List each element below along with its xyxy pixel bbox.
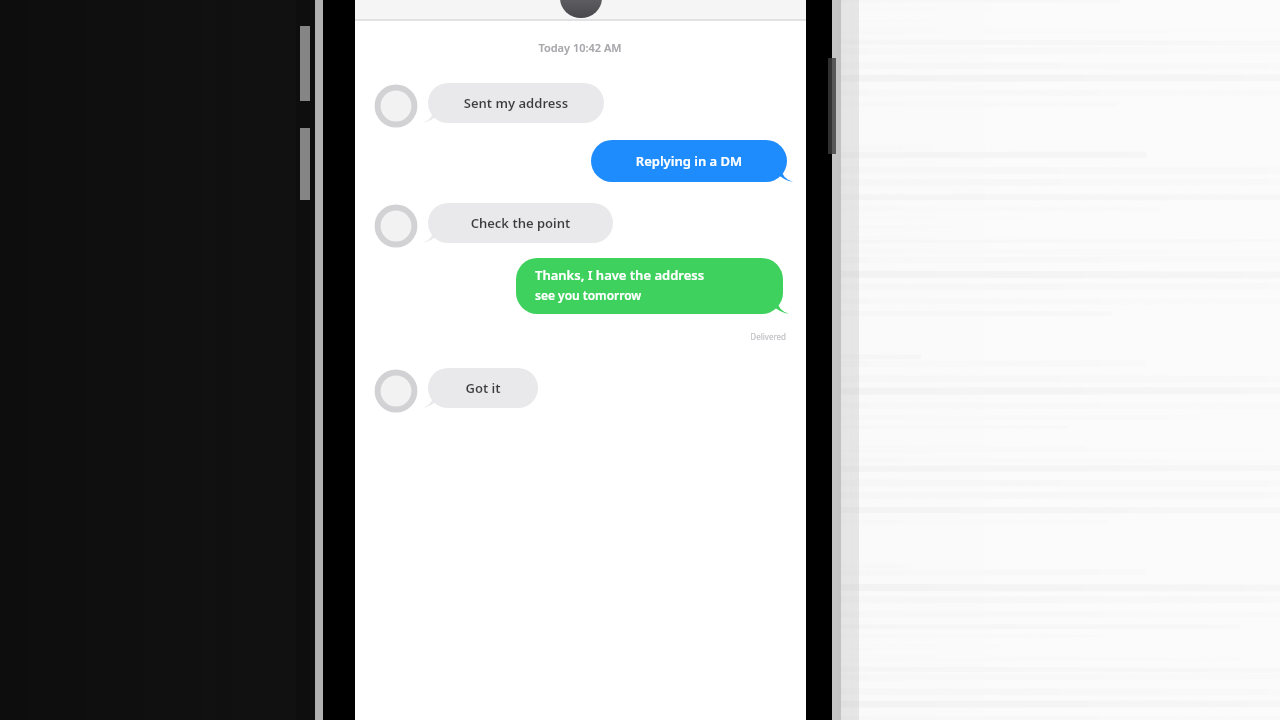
button[interactable]: Replying in a DM <box>591 140 787 182</box>
button[interactable] <box>355 0 806 20</box>
button[interactable]: Sent my address <box>428 83 604 123</box>
staticText: Today 10:42 AM <box>465 40 695 60</box>
staticText: Got it <box>428 379 538 419</box>
button[interactable]: Got it <box>428 368 538 408</box>
button[interactable]: Check the point <box>428 203 613 243</box>
staticText: Thanks, I have the address <box>535 266 802 322</box>
staticText: Sent my address <box>428 94 604 134</box>
staticText: Check the point <box>428 214 613 254</box>
button[interactable]: Contact profile <box>560 0 602 18</box>
button[interactable]: Contact avatar <box>375 206 417 246</box>
staticText: Delivered <box>700 331 786 347</box>
button[interactable]: Thanks, I have the address <box>516 258 783 314</box>
button[interactable]: Contact avatar <box>375 371 417 411</box>
staticText: Replying in a DM <box>591 152 787 194</box>
staticText: see you tomorrow <box>535 287 802 343</box>
button[interactable]: Contact avatar <box>375 86 417 126</box>
